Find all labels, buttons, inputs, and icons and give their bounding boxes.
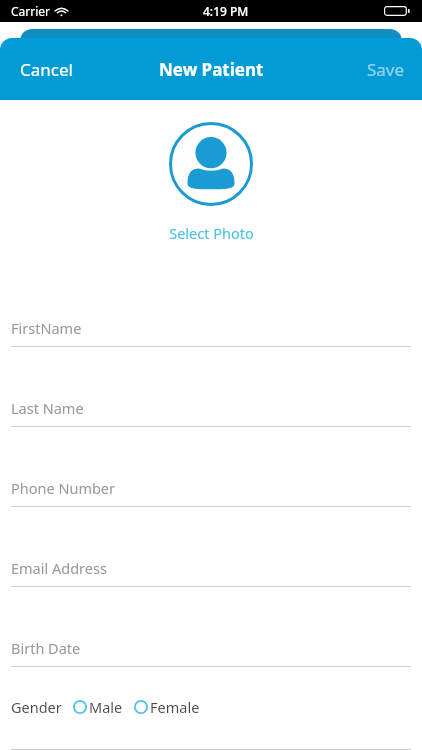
button[interactable]: Male — [73, 693, 123, 721]
button[interactable]: Phone Number — [0, 427, 422, 507]
staticText: Phone Number — [11, 478, 116, 498]
button[interactable]: Last Name — [0, 347, 422, 427]
staticText: Birth Date — [11, 638, 81, 658]
button[interactable]: NHI Number — [0, 747, 422, 750]
staticText: Gender — [11, 697, 62, 717]
staticText: New Patient — [159, 58, 264, 81]
staticText: Carrier — [11, 3, 51, 19]
button[interactable]: Email Address — [0, 507, 422, 587]
button[interactable]: Birth Date — [0, 587, 422, 667]
button[interactable]: Cancel — [0, 48, 83, 91]
button[interactable]: Select Photo — [165, 219, 258, 247]
staticText: Last Name — [11, 398, 84, 418]
staticText: Female — [150, 697, 200, 717]
button[interactable]: Female — [134, 693, 200, 721]
staticText: FirstName — [11, 318, 82, 338]
button[interactable]: Select Photo — [169, 122, 253, 206]
button[interactable]: Save — [357, 48, 422, 91]
staticText: Male — [89, 697, 123, 717]
button[interactable]: FirstName — [0, 267, 422, 347]
staticText: Email Address — [11, 558, 107, 578]
staticText: 4:19 PM — [203, 3, 249, 19]
